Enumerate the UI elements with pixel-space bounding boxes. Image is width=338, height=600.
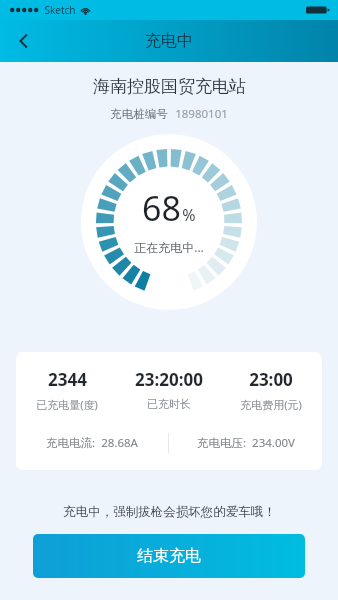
staticText: Sketch xyxy=(44,3,76,17)
staticText: 充电电压: 234.00V xyxy=(197,435,295,451)
staticText: 海南控股国贸充电站 xyxy=(93,76,246,97)
staticText: % xyxy=(182,204,196,226)
button[interactable]: 2344 xyxy=(16,352,322,470)
staticText: 23:20:00 xyxy=(135,368,203,391)
staticText: 正在充电中... xyxy=(134,239,204,255)
staticText: 已充时长 xyxy=(147,397,191,411)
staticText: 结束充电 xyxy=(137,546,201,566)
staticText: 23:00 xyxy=(249,368,293,391)
staticText: 2344 xyxy=(48,368,87,391)
staticText: 充电桩编号 xyxy=(110,107,168,121)
staticText: 充电中，强制拔枪会损坏您的爱车哦！ xyxy=(63,504,276,520)
staticText: 68 xyxy=(142,185,181,231)
staticText: 充电电流: 28.68A xyxy=(46,435,138,451)
button[interactable]: 结束充电 xyxy=(33,534,305,578)
staticText: 18980101 xyxy=(175,106,228,122)
button[interactable]: Back xyxy=(0,20,48,62)
staticText: 充电中 xyxy=(145,31,193,51)
staticText: 充电费用(元) xyxy=(240,397,302,412)
staticText: 已充电量(度) xyxy=(36,397,98,412)
